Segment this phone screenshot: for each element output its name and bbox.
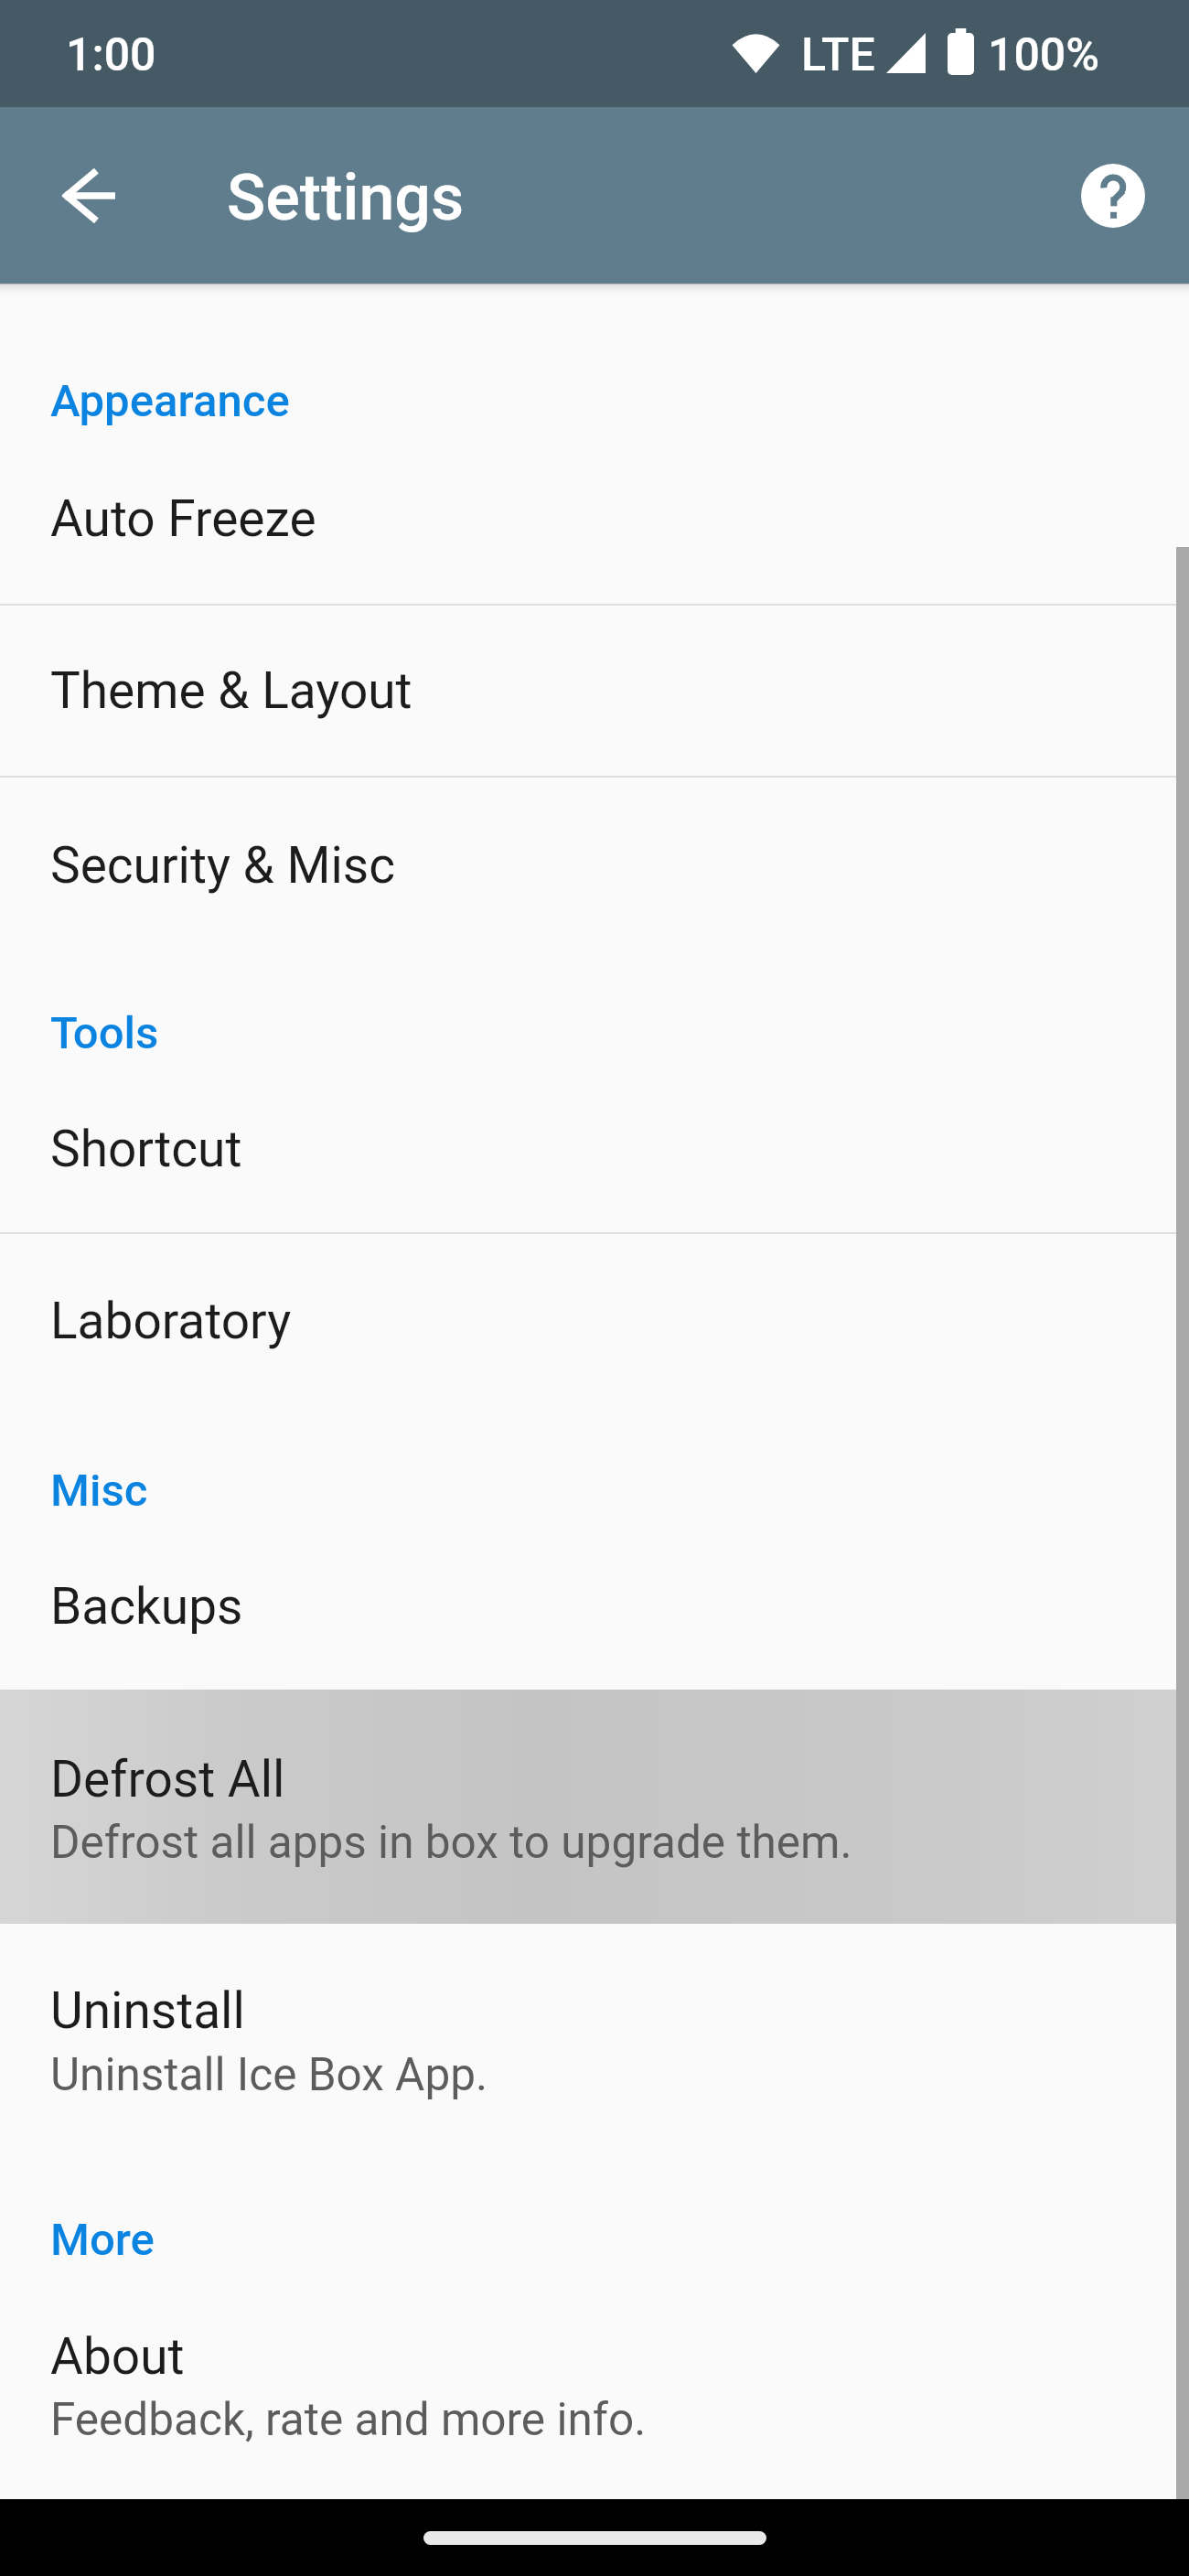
- staticText: 100%: [988, 28, 1099, 82]
- staticText: 1:00: [66, 28, 156, 82]
- staticText: Defrost All: [50, 1750, 285, 1809]
- staticText: Uninstall: [50, 1981, 245, 2040]
- staticText: Appearance: [50, 375, 290, 427]
- button[interactable]: Shortcut: [0, 1062, 1189, 1232]
- button[interactable]: About: [0, 2269, 1189, 2499]
- staticText: Security & Misc: [50, 836, 396, 895]
- button[interactable]: Navigate up: [41, 147, 137, 243]
- staticText: Feedback, rate and more info.: [50, 2393, 647, 2446]
- staticText: Shortcut: [50, 1120, 242, 1178]
- staticText: More: [50, 2214, 155, 2266]
- staticText: Uninstall Ice Box App.: [50, 2048, 488, 2101]
- staticText: Theme & Layout: [50, 661, 412, 720]
- staticText: Defrost all apps in box to upgrade them.: [50, 1816, 852, 1869]
- button[interactable]: Uninstall: [0, 1924, 1189, 2154]
- button[interactable]: Auto Freeze: [0, 432, 1189, 604]
- staticText: Laboratory: [50, 1292, 292, 1350]
- staticText: Misc: [50, 1465, 148, 1517]
- staticText: Backups: [50, 1577, 243, 1636]
- button[interactable]: Laboratory: [0, 1234, 1189, 1406]
- staticText: Settings: [227, 160, 465, 235]
- button[interactable]: Security & Misc: [0, 778, 1189, 950]
- staticText: About: [50, 2327, 185, 2386]
- button[interactable]: Help: [1065, 147, 1161, 243]
- button[interactable]: [0, 1690, 1189, 1924]
- staticText: Tools: [50, 1007, 159, 1059]
- button[interactable]: Theme & Layout: [0, 606, 1189, 776]
- staticText: LTE: [801, 28, 875, 82]
- button[interactable]: Backups: [0, 1519, 1189, 1690]
- button[interactable]: Defrost All: [0, 1690, 1189, 1924]
- staticText: Auto Freeze: [50, 489, 316, 548]
